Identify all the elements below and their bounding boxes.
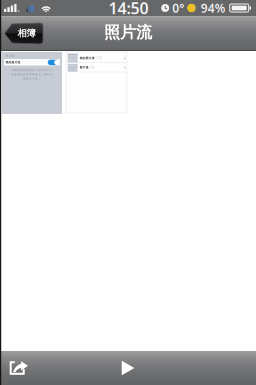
staticText: 相簿 bbox=[17, 27, 35, 39]
button[interactable]: 相簿 bbox=[4, 23, 43, 44]
staticText: 0° bbox=[172, 0, 184, 16]
staticText: 传送到您的所有设备上。照片会 bbox=[11, 73, 53, 76]
staticText: (3) bbox=[90, 66, 94, 69]
staticText: 照片流 bbox=[104, 23, 152, 42]
staticText: 我的照片流 bbox=[6, 61, 21, 64]
button[interactable]: Photo 1 bbox=[2, 52, 62, 114]
button[interactable]: Photo 2 bbox=[66, 52, 127, 113]
button[interactable]: Slideshow bbox=[108, 351, 148, 385]
button[interactable]: Share bbox=[0, 351, 38, 385]
staticText: (18) bbox=[96, 56, 102, 60]
staticText: 我的照片流 bbox=[80, 57, 95, 60]
staticText: 自动将拍摄的照片上传并将它们 bbox=[11, 68, 53, 72]
staticText: 14:50 bbox=[108, 0, 148, 19]
staticText: 照片流 bbox=[80, 66, 89, 69]
staticText: 94% bbox=[201, 0, 226, 16]
staticText: 保留三十天。 bbox=[23, 77, 41, 80]
staticText: 照片流 bbox=[6, 54, 15, 57]
